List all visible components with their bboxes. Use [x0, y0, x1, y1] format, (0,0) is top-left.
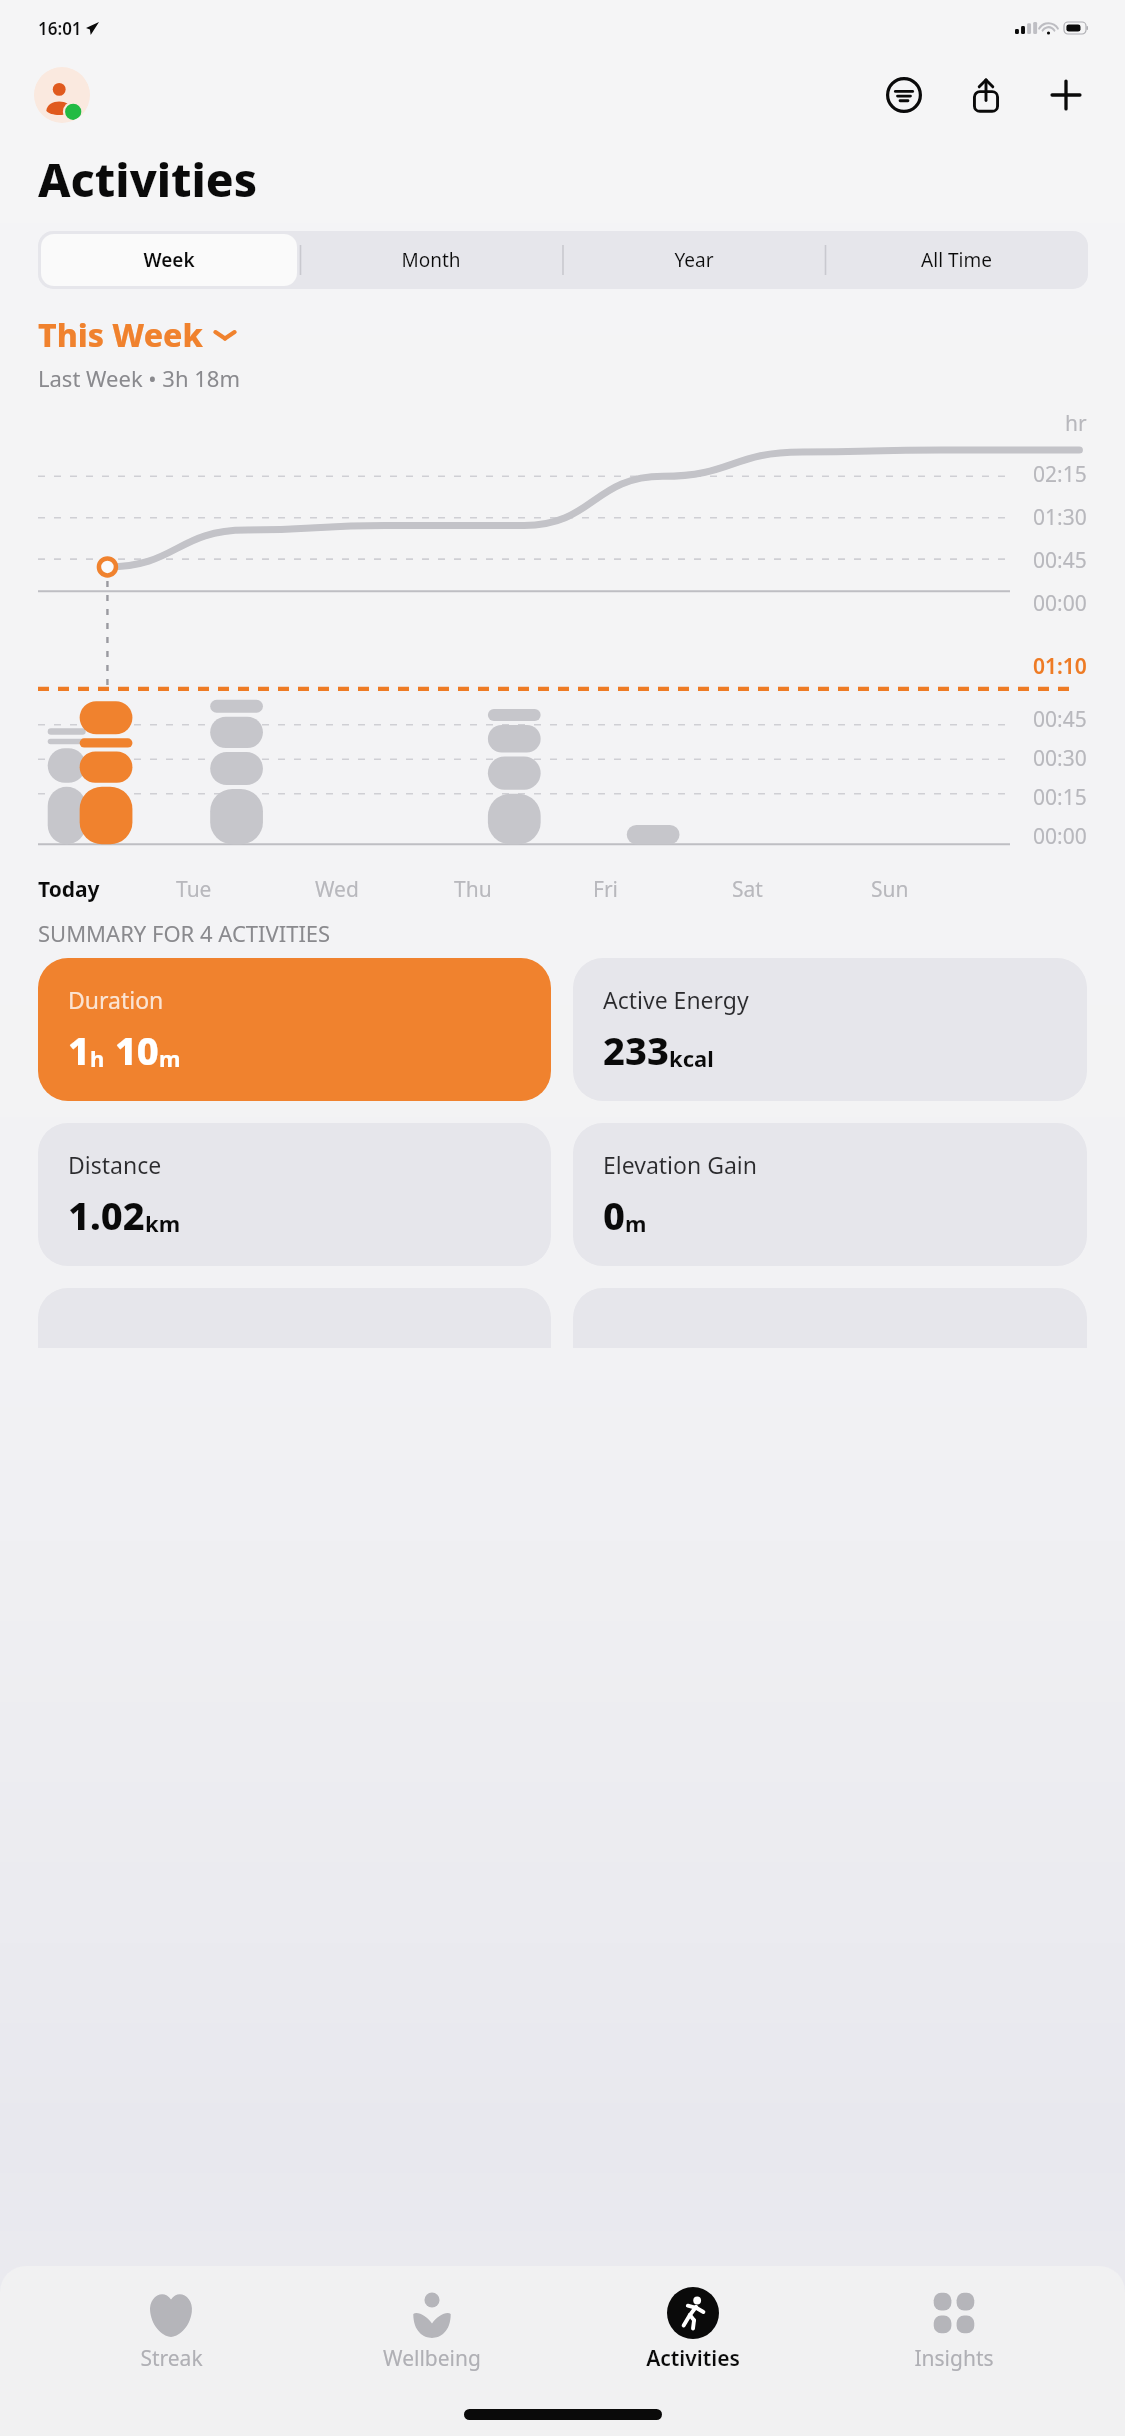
button[interactable]: Share [957, 66, 1015, 124]
button[interactable]: Duration [38, 958, 551, 1101]
staticText: 00:30 [1033, 744, 1087, 773]
staticText: kcal [669, 1043, 714, 1073]
staticText: 16:01 [38, 17, 82, 40]
staticText: h [90, 1043, 105, 1073]
staticText: Sat [732, 875, 763, 904]
button[interactable]: Wellbeing [342, 2284, 522, 2373]
staticText: 1.02 [68, 1189, 145, 1241]
staticText: Today [38, 875, 100, 904]
staticText: Month [401, 247, 461, 273]
staticText: 1 [68, 1024, 90, 1076]
staticText: Active Energy [603, 984, 749, 1015]
staticText: Streak [140, 2344, 203, 2373]
staticText: Week [143, 247, 195, 273]
button[interactable]: All Time [828, 234, 1085, 286]
button[interactable]: Activities [603, 2284, 783, 2373]
staticText: Elevation Gain [603, 1149, 757, 1180]
button[interactable]: Year [565, 234, 822, 286]
button[interactable]: Week [41, 234, 297, 286]
button[interactable]: Profile [34, 67, 90, 123]
staticText: Wellbeing [383, 2344, 481, 2373]
staticText: Insights [914, 2344, 994, 2373]
staticText: 01:10 [1033, 652, 1087, 681]
staticText: 02:15 [1033, 460, 1087, 489]
staticText: 00:00 [1033, 822, 1087, 851]
button[interactable]: Add [1037, 66, 1095, 124]
staticText: 0 [603, 1189, 625, 1241]
staticText: Activities [38, 148, 258, 211]
button[interactable]: Active Energy [573, 958, 1087, 1101]
button[interactable]: Distance [38, 1123, 551, 1266]
staticText: km [145, 1208, 181, 1238]
staticText: hr [1065, 409, 1087, 438]
staticText: Activities [646, 2344, 740, 2373]
staticText: Wed [315, 875, 359, 904]
staticText: m [159, 1043, 181, 1073]
staticText: SUMMARY FOR 4 ACTIVITIES [38, 918, 331, 948]
button[interactable]: Streak [81, 2284, 261, 2373]
staticText: 01:30 [1033, 503, 1087, 532]
staticText: 00:15 [1033, 783, 1087, 812]
staticText: 00:45 [1033, 705, 1087, 734]
staticText: All Time [921, 247, 992, 273]
staticText: This Week [38, 313, 203, 357]
staticText: Distance [68, 1149, 162, 1180]
staticText: Tue [176, 875, 212, 904]
button[interactable]: Filter [875, 66, 933, 124]
button[interactable]: Month [303, 234, 559, 286]
staticText: Duration [68, 984, 164, 1015]
staticText: 233 [603, 1024, 669, 1076]
button[interactable]: This Week [38, 313, 237, 357]
staticText: Thu [454, 875, 492, 904]
staticText: Fri [593, 875, 618, 904]
staticText: Last Week • 3h 18m [38, 363, 241, 393]
button[interactable]: Elevation Gain [573, 1123, 1087, 1266]
staticText: m [625, 1208, 647, 1238]
staticText: 00:00 [1033, 589, 1087, 618]
button[interactable]: Insights [864, 2284, 1044, 2373]
staticText: 10 [105, 1024, 159, 1076]
staticText: Sun [871, 875, 909, 904]
staticText: 00:45 [1033, 546, 1087, 575]
staticText: Year [674, 247, 714, 273]
